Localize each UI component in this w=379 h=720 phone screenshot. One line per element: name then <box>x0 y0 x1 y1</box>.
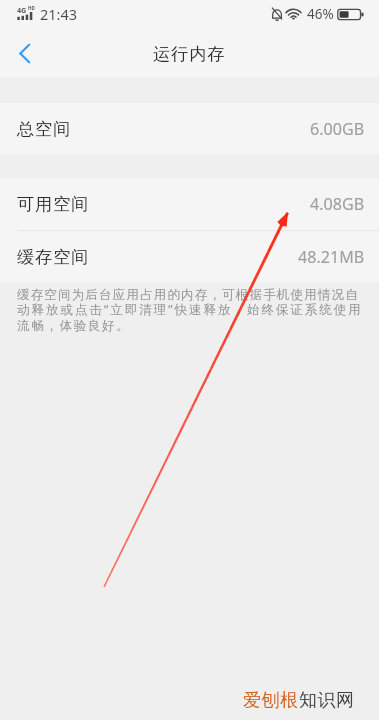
staticText: HD <box>28 5 35 11</box>
staticText: 缓存空间为后台应用占用的内存，可根据手机使用情况自 <box>17 287 359 303</box>
staticText: 48.21MB <box>298 246 365 268</box>
button[interactable]: Back <box>0 29 48 77</box>
other: Silent mode <box>272 8 282 20</box>
staticText: 总空间 <box>17 118 72 140</box>
staticText: 4G <box>17 5 27 15</box>
staticText: 动释放或点击“立即清理”快速释放，始终保证系统使用 <box>17 301 363 318</box>
staticText: 缓存空间 <box>17 246 90 268</box>
button[interactable]: 总空间 <box>0 103 379 154</box>
staticText: 知识网 <box>299 689 355 712</box>
staticText: 4.08GB <box>310 193 365 215</box>
staticText: 可用空间 <box>17 193 90 215</box>
staticText: 爱刨根 <box>243 689 299 712</box>
staticText: 运行内存 <box>153 43 226 65</box>
staticText: 6.00GB <box>310 118 365 140</box>
button[interactable]: 可用空间 <box>0 178 379 230</box>
staticText: 46% <box>307 5 334 23</box>
staticText: 21:43 <box>40 4 78 24</box>
button[interactable]: 缓存空间 <box>0 231 379 282</box>
staticText: 流畅，体验良好。 <box>17 318 131 334</box>
